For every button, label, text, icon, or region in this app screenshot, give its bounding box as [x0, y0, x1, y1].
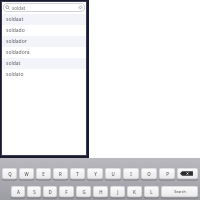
staticText: W	[24, 171, 29, 177]
button[interactable]: soldado	[2, 25, 86, 36]
button[interactable]: L	[144, 186, 159, 198]
button[interactable]: soldat	[3, 3, 85, 12]
staticText: P	[166, 171, 169, 177]
staticText: Q	[8, 171, 12, 177]
staticText: Y	[94, 171, 97, 177]
button[interactable]: A	[11, 186, 25, 198]
button[interactable]: soldat	[2, 58, 86, 69]
staticText: soldat	[6, 60, 21, 67]
button[interactable]: J	[110, 186, 125, 198]
button[interactable]: T	[70, 168, 85, 180]
staticText: soldador	[6, 38, 27, 45]
button[interactable]: P	[159, 168, 175, 180]
staticText: T	[76, 171, 79, 177]
button[interactable]: U	[105, 168, 121, 180]
button[interactable]: R	[53, 168, 68, 180]
staticText: D	[48, 189, 52, 195]
button[interactable]: soldato	[2, 69, 86, 80]
button[interactable]: Backspace	[177, 168, 198, 180]
staticText: soldadora	[6, 49, 30, 56]
button[interactable]: I	[123, 168, 139, 180]
button[interactable]: D	[43, 186, 57, 198]
staticText: F	[65, 189, 68, 195]
button[interactable]: Clear search	[77, 4, 84, 11]
button[interactable]: soldaat	[2, 14, 86, 25]
staticText: S	[33, 189, 36, 195]
button[interactable]: Y	[87, 168, 103, 180]
button[interactable]: W	[19, 168, 34, 180]
button[interactable]: Q	[2, 168, 17, 180]
button[interactable]: S	[27, 186, 41, 198]
button[interactable]: F	[59, 186, 74, 198]
button[interactable]: O	[141, 168, 157, 180]
staticText: E	[42, 171, 45, 177]
button[interactable]: E	[36, 168, 51, 180]
staticText: R	[59, 171, 62, 177]
staticText: O	[147, 171, 151, 177]
staticText: H	[99, 189, 103, 195]
staticText: soldado	[6, 27, 25, 34]
staticText: G	[82, 189, 86, 195]
button[interactable]: soldadora	[2, 47, 86, 58]
staticText: Search	[174, 189, 186, 194]
button[interactable]: G	[76, 186, 91, 198]
staticText: K	[133, 189, 136, 195]
staticText: soldat	[12, 5, 26, 11]
button[interactable]: K	[127, 186, 142, 198]
staticText: L	[150, 189, 153, 195]
staticText: soldato	[6, 71, 24, 78]
button[interactable]: Search	[161, 186, 198, 198]
button[interactable]: soldador	[2, 36, 86, 47]
staticText: U	[111, 171, 115, 177]
staticText: J	[117, 189, 119, 195]
staticText: soldaat	[6, 16, 24, 23]
staticText: A	[17, 189, 20, 195]
button[interactable]: H	[93, 186, 108, 198]
staticText: I	[130, 171, 132, 177]
